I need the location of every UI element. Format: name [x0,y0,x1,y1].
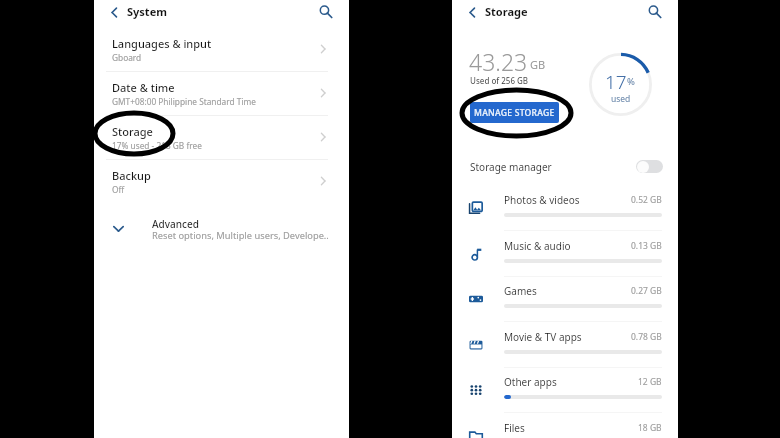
staticText: Files [504,421,525,435]
staticText: 12 GB [638,376,662,388]
staticText: Off [112,184,125,195]
button[interactable]: Languages & input [94,28,349,72]
staticText: Music & audio [504,239,571,253]
staticText: 0.52 GB [631,194,662,206]
button[interactable]: Back [103,1,125,23]
staticText: Used of 256 GB [470,75,529,86]
staticText: Advanced [152,217,199,231]
staticText: GMT+08:00 Philippine Standard Time [112,96,256,107]
button[interactable]: Date & time [94,72,349,116]
button[interactable]: Backup [94,160,349,204]
staticText: Languages & input [112,36,212,51]
staticText: 17% used - 213 GB free [112,140,202,151]
staticText: Gboard [112,52,142,63]
staticText: 18 GB [638,422,662,434]
staticText: Storage [485,4,528,19]
button[interactable]: Search [644,1,664,21]
staticText: Photos & videos [504,193,580,207]
staticText: Games [504,284,537,298]
staticText: 17 [605,69,627,95]
button[interactable]: Photos & videos [452,186,678,231]
button[interactable]: Storage [94,116,349,160]
button[interactable]: Back [461,1,483,23]
staticText: 0.27 GB [631,285,662,297]
staticText: Backup [112,168,151,183]
staticText: 0.13 GB [631,240,662,252]
button[interactable]: Storage manager [452,150,678,184]
staticText: Other apps [504,375,557,389]
staticText: Reset options, Multiple users, Develope.… [152,229,329,242]
button[interactable]: Games [452,277,678,322]
button[interactable]: Files [452,414,678,438]
button[interactable]: Music & audio [452,232,678,277]
button[interactable]: Advanced [94,210,349,244]
staticText: Storage [112,124,153,139]
staticText: System [127,4,167,19]
button[interactable]: Search [315,1,335,21]
staticText: Movie & TV apps [504,330,582,344]
staticText: GB [530,57,546,72]
staticText: 0.78 GB [631,331,662,343]
staticText: Storage manager [470,160,552,174]
staticText: used [611,93,631,105]
button[interactable]: MANAGE STORAGE [470,102,559,123]
staticText: % [627,75,635,88]
button[interactable]: Other apps [452,368,678,413]
staticText: Date & time [112,80,175,95]
staticText: 43.23 [469,46,528,77]
button[interactable]: Movie & TV apps [452,323,678,368]
staticText: MANAGE STORAGE [474,107,555,119]
